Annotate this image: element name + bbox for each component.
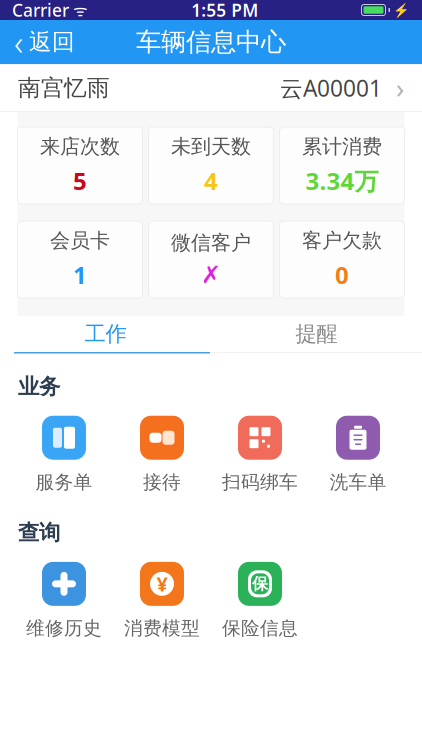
staticText: › [382,70,404,106]
staticText: ✗ [201,261,221,288]
staticText: 查询 [18,520,60,546]
button[interactable]: 接待 [113,416,211,494]
button[interactable]: 客户欠款 [279,221,404,298]
staticText: 微信客户 [171,231,251,255]
staticText: 5 [73,165,87,197]
staticText: 云A00001 [280,73,382,103]
button[interactable]: 微信客户 [148,221,273,298]
staticText: 未到天数 [171,134,251,159]
button[interactable]: 维修历史 [15,562,113,640]
staticText: 扫码绑车 [222,471,298,494]
staticText: 服务单 [35,471,92,494]
staticText: 4 [204,165,218,197]
button[interactable]: 提醒 [211,316,422,352]
button[interactable]: 扫码绑车 [211,416,309,494]
staticText: 提醒 [295,321,337,347]
staticText: ‹ [14,19,23,65]
staticText: 消费模型 [124,617,200,640]
staticText: 来店次数 [40,134,120,159]
staticText: 南宫忆雨 [18,74,110,102]
staticText: 1 [73,259,87,291]
staticText: Carrier [12,0,69,21]
staticText: ⚡ [393,2,410,18]
staticText: 接待 [143,471,181,494]
button[interactable]: 未到天数 [148,127,273,204]
staticText: 工作 [84,321,126,347]
button[interactable]: 工作 [0,316,211,352]
staticText: 车辆信息中心 [136,26,286,57]
staticText: 返回 [29,28,75,56]
staticText: ¥ [156,571,167,597]
staticText: 3.34万 [305,165,378,197]
button[interactable]: 南宫忆雨 [0,64,422,112]
staticText: 洗车单 [329,471,386,494]
button[interactable]: ¥ [113,562,211,640]
staticText: 保险信息 [222,617,298,640]
staticText: 会员卡 [50,228,110,253]
staticText: 维修历史 [26,617,102,640]
staticText: 客户欠款 [302,228,382,253]
staticText: 业务 [18,373,60,400]
button[interactable]: 服务单 [15,416,113,494]
button[interactable]: 来店次数 [17,127,142,204]
button[interactable]: 会员卡 [17,221,142,298]
button[interactable]: 洗车单 [309,416,407,494]
staticText: 0 [335,259,349,291]
button[interactable]: 保 [211,562,309,640]
button[interactable]: ‹ [0,20,89,64]
staticText: 累计消费 [302,134,382,159]
staticText: 1:55 PM [191,0,258,21]
staticText: ᯤ [69,0,88,21]
button[interactable]: 累计消费 [279,127,404,204]
staticText: 保 [252,574,268,594]
